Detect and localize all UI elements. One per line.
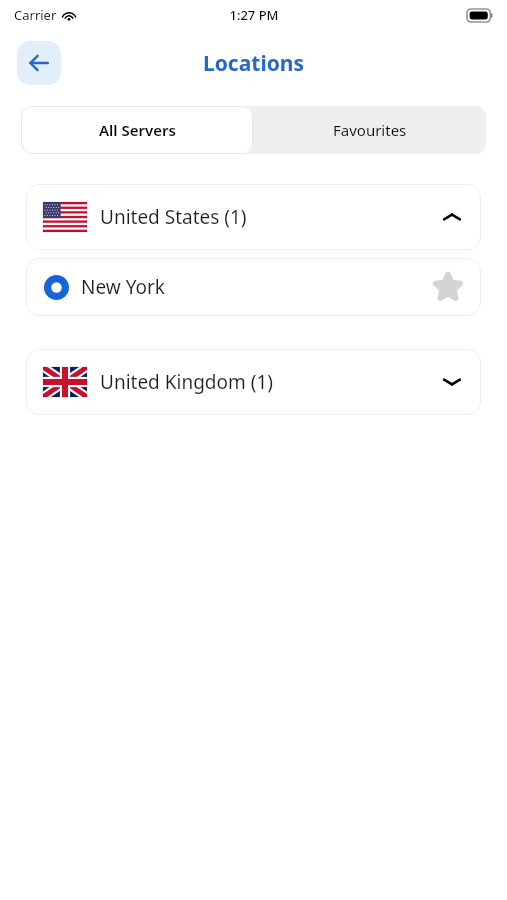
staticText: 1:27 PM (229, 6, 279, 24)
staticText: All Servers (99, 120, 176, 140)
button[interactable]: United States (1) (26, 184, 481, 250)
staticText: Carrier (14, 6, 57, 24)
button[interactable]: Favourites (253, 106, 486, 154)
button[interactable]: United Kingdom (1) (26, 349, 481, 415)
staticText: Favourites (333, 120, 407, 140)
staticText: New York (81, 274, 165, 300)
button[interactable]: New York (26, 258, 481, 316)
staticText: Locations (203, 49, 304, 78)
staticText: United Kingdom (1) (100, 369, 273, 395)
button[interactable]: All Servers (21, 106, 253, 154)
button[interactable]: Favourite (431, 270, 465, 304)
staticText: United States (1) (100, 204, 247, 230)
button[interactable]: Back (17, 41, 61, 85)
